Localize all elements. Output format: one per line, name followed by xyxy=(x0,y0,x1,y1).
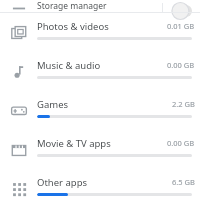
staticText: 2.2 GB xyxy=(172,99,195,109)
button[interactable]: Other apps xyxy=(0,169,200,200)
button[interactable]: Movie & TV apps xyxy=(0,130,200,169)
staticText: 6.5 GB xyxy=(172,177,195,187)
button[interactable]: Music & audio xyxy=(0,52,200,91)
staticText: Photos & videos xyxy=(37,20,109,33)
button[interactable]: Storage manager xyxy=(0,0,200,12)
staticText: 0.00 GB xyxy=(167,60,195,70)
staticText: Games xyxy=(37,98,69,111)
staticText: Movie & TV apps xyxy=(37,137,111,150)
button[interactable]: Photos & videos xyxy=(0,13,200,52)
staticText: Other apps xyxy=(37,176,88,189)
staticText: Music & audio xyxy=(37,59,101,72)
staticText: Storage manager xyxy=(37,0,107,12)
button[interactable]: Storage manager toggle xyxy=(170,0,196,12)
staticText: 0.01 GB xyxy=(167,21,195,31)
button[interactable]: Games xyxy=(0,91,200,130)
staticText: 0.00 GB xyxy=(167,138,195,148)
